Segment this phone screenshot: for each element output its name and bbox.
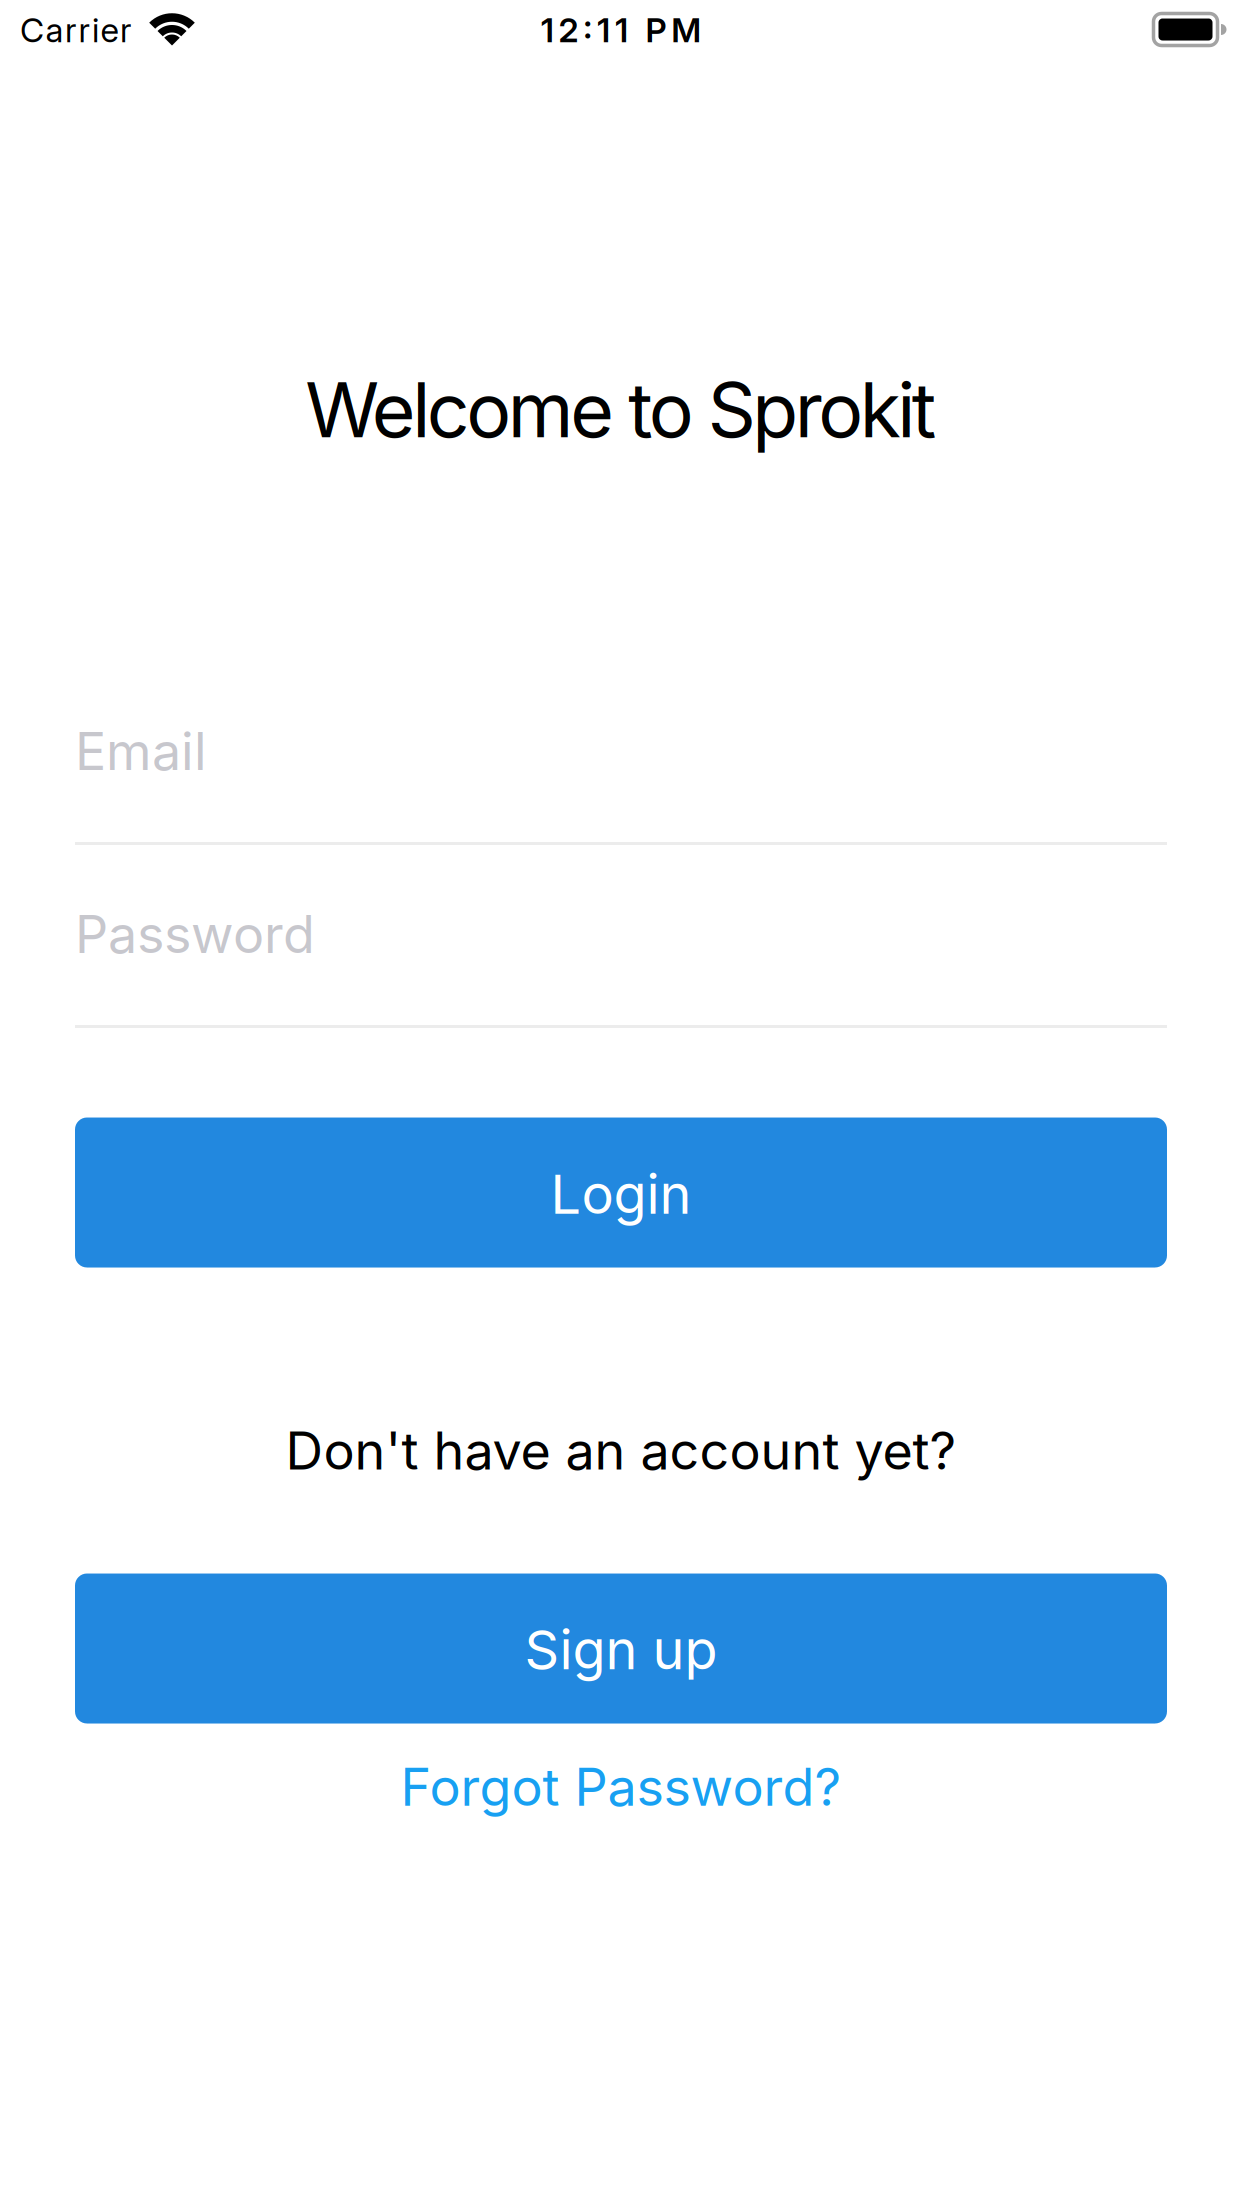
staticText: Carrier bbox=[20, 10, 131, 50]
button[interactable]: Forgot Password? bbox=[400, 1755, 841, 1818]
staticText: Sign up bbox=[524, 1617, 717, 1682]
staticText: Welcome to Sprokit bbox=[305, 365, 937, 455]
button[interactable]: Login bbox=[75, 1117, 1167, 1267]
staticText: Don't have an account yet? bbox=[285, 1419, 956, 1482]
staticText: Email bbox=[75, 719, 207, 782]
button[interactable]: Sign up bbox=[75, 1573, 1167, 1723]
staticText: 12:11 PM bbox=[541, 10, 701, 50]
button[interactable]: Password bbox=[75, 911, 1167, 1041]
staticText: Password bbox=[75, 902, 315, 965]
staticText: Forgot Password? bbox=[400, 1755, 841, 1818]
staticText: Login bbox=[550, 1161, 691, 1227]
button[interactable]: Email bbox=[75, 728, 1167, 858]
